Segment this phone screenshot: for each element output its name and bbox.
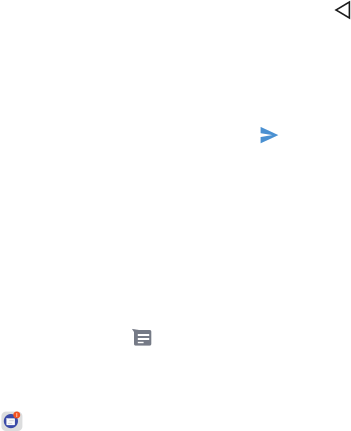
- button[interactable]: Back: [331, 0, 351, 22]
- button[interactable]: Messages app, 1 unread: [0, 410, 24, 431]
- button[interactable]: Messages: [131, 328, 153, 348]
- button[interactable]: Send: [259, 126, 279, 144]
